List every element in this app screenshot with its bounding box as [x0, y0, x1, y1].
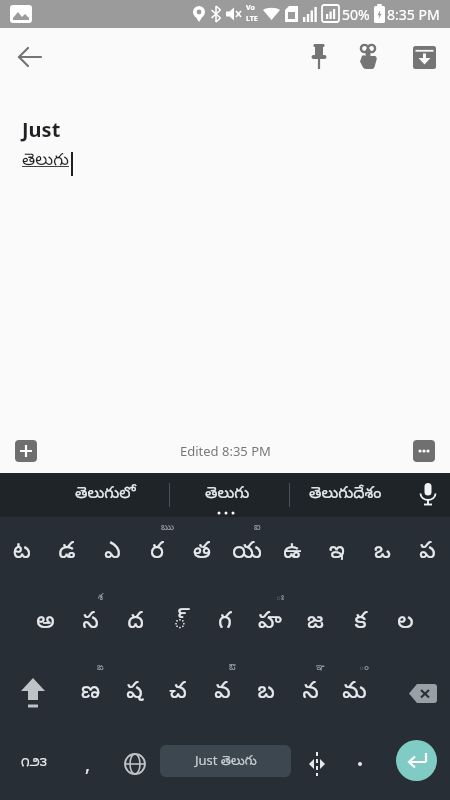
- button[interactable]: క: [338, 588, 382, 658]
- button[interactable]: తెలుగుదేశం: [288, 473, 403, 517]
- staticText: Vo LTE: [246, 3, 258, 23]
- staticText: Just తెలుగు: [195, 751, 257, 771]
- staticText: స: [82, 608, 99, 639]
- staticText: ఋ: [161, 522, 174, 534]
- staticText: ఔ: [229, 662, 236, 674]
- button[interactable]: [413, 440, 435, 462]
- staticText: తెలుగు: [22, 150, 69, 173]
- staticText: తెలుగు: [205, 484, 250, 506]
- staticText: ఇ: [329, 538, 345, 569]
- button[interactable]: [398, 665, 448, 721]
- staticText: గ: [218, 608, 232, 639]
- button[interactable]: [396, 740, 437, 781]
- button[interactable]: ఉ: [270, 518, 314, 588]
- button[interactable]: ్: [158, 588, 202, 658]
- button[interactable]: ల: [383, 588, 427, 658]
- button[interactable]: తెలుగులో: [20, 473, 190, 517]
- button[interactable]: న: [288, 658, 332, 728]
- staticText: అ: [36, 608, 55, 639]
- button[interactable]: ఒ: [360, 518, 404, 588]
- button[interactable]: య: [225, 518, 269, 588]
- button[interactable]: ,: [68, 735, 108, 793]
- staticText: జ: [307, 608, 324, 639]
- button[interactable]: ణ: [68, 658, 112, 728]
- staticText: ఙ: [97, 662, 104, 674]
- staticText: ఉ: [283, 538, 302, 569]
- button[interactable]: తెలుగు: [172, 473, 282, 517]
- staticText: వ: [214, 678, 231, 709]
- button[interactable]: వ: [200, 658, 244, 728]
- staticText: చ: [169, 678, 187, 709]
- staticText: ఎ: [104, 538, 121, 569]
- button[interactable]: [346, 35, 390, 79]
- staticText: ల: [397, 608, 414, 639]
- staticText: 50%: [342, 5, 370, 24]
- button[interactable]: మ: [332, 658, 376, 728]
- button[interactable]: గ: [203, 588, 247, 658]
- staticText: ద: [127, 608, 144, 639]
- staticText: క: [354, 608, 367, 639]
- button[interactable]: [295, 735, 333, 793]
- button[interactable]: [113, 735, 157, 793]
- button[interactable]: ౧౨౩: [8, 735, 60, 793]
- staticText: ణ: [81, 678, 100, 709]
- staticText: ,: [85, 751, 91, 777]
- staticText: శ: [98, 592, 103, 604]
- staticText: ర: [150, 538, 164, 569]
- button[interactable]: [405, 473, 450, 517]
- staticText: ః: [276, 592, 284, 604]
- staticText: ఐ: [254, 522, 261, 534]
- staticText: బ: [257, 678, 275, 709]
- staticText: తెలుగుదేశం: [309, 484, 382, 506]
- button[interactable]: [402, 35, 446, 79]
- button[interactable]: త: [180, 518, 224, 588]
- staticText: తెలుగులో: [75, 484, 136, 506]
- staticText: 8:35 PM: [387, 5, 440, 24]
- staticText: ౧౨౩: [21, 755, 47, 773]
- button[interactable]: ర: [135, 518, 179, 588]
- button[interactable]: చ: [156, 658, 200, 728]
- staticText: త: [193, 538, 211, 569]
- staticText: Edited 8:35 PM: [180, 442, 271, 460]
- button[interactable]: బ: [244, 658, 288, 728]
- staticText: ఒ: [374, 538, 391, 569]
- button[interactable]: ఇ: [315, 518, 359, 588]
- staticText: న: [302, 678, 319, 709]
- button[interactable]: [297, 35, 341, 79]
- staticText: ప: [419, 538, 436, 569]
- button[interactable]: అ: [23, 588, 67, 658]
- button[interactable]: ట: [0, 518, 44, 588]
- staticText: మ: [342, 678, 367, 709]
- staticText: డ: [58, 538, 76, 569]
- button[interactable]: హ: [248, 588, 292, 658]
- staticText: ట: [13, 538, 31, 569]
- button[interactable]: [340, 735, 380, 793]
- button[interactable]: Just తెలుగు: [160, 745, 291, 777]
- button[interactable]: డ: [45, 518, 89, 588]
- button[interactable]: ద: [113, 588, 157, 658]
- button[interactable]: [8, 35, 52, 79]
- staticText: ం: [359, 662, 369, 674]
- staticText: ్: [173, 608, 187, 639]
- button[interactable]: స: [68, 588, 112, 658]
- staticText: Just: [22, 116, 61, 143]
- staticText: ష: [126, 678, 143, 709]
- staticText: ఞ: [316, 662, 325, 674]
- staticText: య: [232, 538, 262, 569]
- button[interactable]: జ: [293, 588, 337, 658]
- button[interactable]: ష: [112, 658, 156, 728]
- button[interactable]: [8, 665, 58, 721]
- staticText: హ: [258, 608, 282, 639]
- button[interactable]: [15, 440, 37, 462]
- button[interactable]: ప: [405, 518, 449, 588]
- button[interactable]: ఎ: [90, 518, 134, 588]
